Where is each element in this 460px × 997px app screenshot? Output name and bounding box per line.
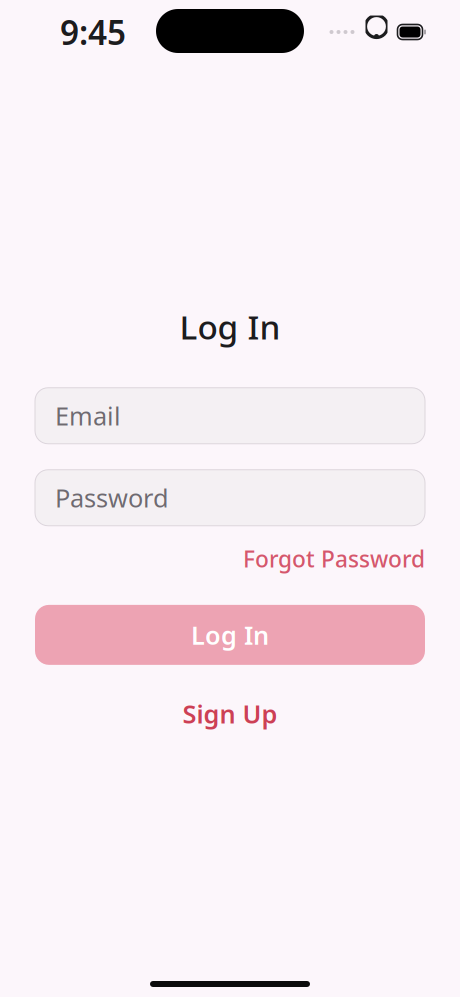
button[interactable]: Sign Up: [160, 687, 299, 740]
staticText: Sign Up: [182, 697, 277, 730]
staticText: Password: [55, 481, 169, 514]
button[interactable]: Password: [35, 470, 425, 526]
staticText: Email: [55, 399, 121, 432]
button[interactable]: Log In: [35, 605, 425, 665]
button[interactable]: Forgot Password: [35, 526, 425, 578]
button[interactable]: Email: [35, 388, 425, 444]
staticText: 9:45: [60, 10, 126, 54]
staticText: Log In: [179, 304, 280, 349]
staticText: Forgot Password: [243, 544, 425, 574]
staticText: Log In: [191, 618, 269, 652]
